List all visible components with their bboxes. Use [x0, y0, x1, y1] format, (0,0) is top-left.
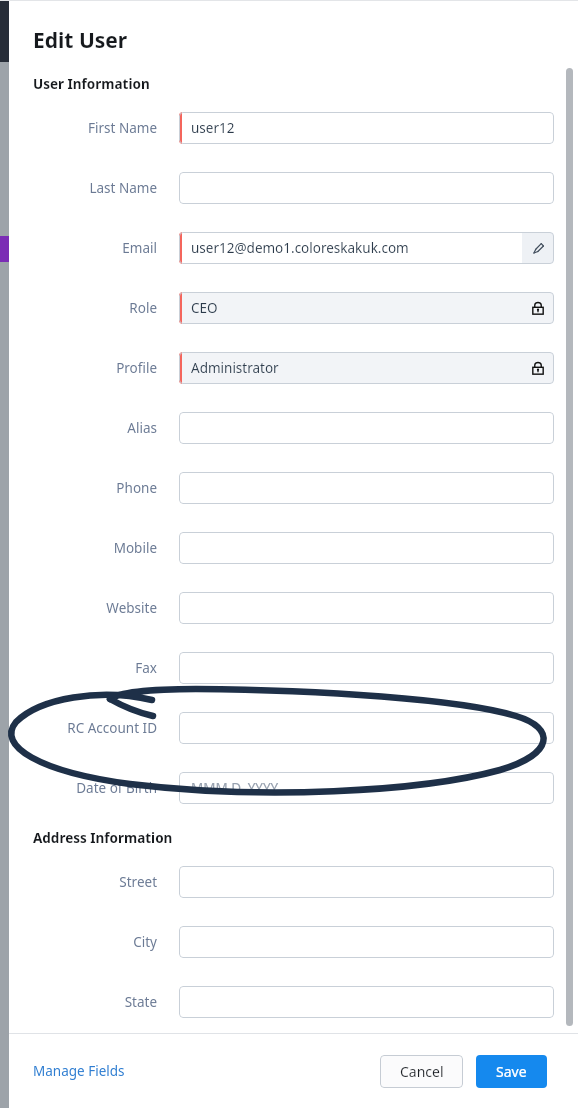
staticText: Cancel — [400, 1062, 444, 1081]
button[interactable]: Manage Fields — [33, 1056, 125, 1086]
staticText: City — [133, 933, 157, 951]
button[interactable] — [179, 172, 554, 204]
button[interactable] — [179, 986, 554, 1018]
staticText: Street — [119, 873, 157, 891]
button[interactable]: Edit email — [522, 232, 554, 264]
button[interactable]: user12 — [179, 112, 554, 144]
button[interactable]: Save — [476, 1055, 547, 1088]
other: Field locked — [522, 292, 554, 324]
staticText: Address Information — [33, 829, 173, 847]
button[interactable] — [179, 866, 554, 898]
staticText: Administrator — [191, 359, 279, 377]
staticText: RC Account ID — [67, 719, 157, 737]
staticText: user12 — [191, 119, 235, 137]
staticText: MMM D, YYYY — [191, 779, 279, 797]
other: Field locked — [522, 352, 554, 384]
button[interactable]: Edit User — [33, 26, 128, 55]
button[interactable] — [179, 592, 554, 624]
button[interactable]: user12@demo1.coloreskakuk.com — [179, 232, 554, 264]
staticText: Save — [496, 1062, 527, 1081]
staticText: First Name — [88, 119, 157, 137]
button[interactable] — [179, 472, 554, 504]
button[interactable]: Administrator — [179, 352, 554, 384]
staticText: Profile — [116, 359, 157, 377]
staticText: User Information — [33, 75, 150, 93]
staticText: State — [124, 993, 157, 1011]
button[interactable] — [179, 532, 554, 564]
staticText: Alias — [127, 419, 157, 437]
staticText: user12@demo1.coloreskakuk.com — [191, 239, 409, 257]
button[interactable] — [179, 712, 554, 744]
staticText: Manage Fields — [33, 1062, 125, 1080]
button[interactable]: MMM D, YYYY — [179, 772, 554, 804]
button[interactable]: CEO — [179, 292, 554, 324]
staticText: Fax — [135, 659, 157, 677]
button[interactable] — [179, 652, 554, 684]
staticText: Website — [106, 599, 157, 617]
button[interactable]: Cancel — [380, 1055, 463, 1088]
button[interactable] — [179, 412, 554, 444]
staticText: Email — [122, 239, 157, 257]
button[interactable] — [179, 926, 554, 958]
staticText: Mobile — [113, 539, 157, 557]
staticText: Last Name — [89, 179, 157, 197]
staticText: CEO — [191, 299, 218, 317]
staticText: Role — [129, 299, 157, 317]
staticText: Phone — [116, 479, 157, 497]
staticText: Date of Birth — [76, 779, 157, 797]
